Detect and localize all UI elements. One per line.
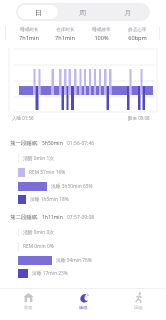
staticText: REM 0min 0% bbox=[23, 243, 54, 250]
staticText: 1h11min bbox=[42, 214, 63, 221]
staticText: 01:56-07:46 bbox=[67, 140, 95, 147]
button[interactable]: 运动 bbox=[111, 292, 166, 316]
staticText: 浅睡 54min 76% bbox=[56, 257, 92, 264]
staticText: 周 bbox=[79, 8, 86, 17]
staticText: 月 bbox=[124, 8, 131, 17]
staticText: 07:57-09:08 bbox=[67, 214, 95, 221]
staticText: 睡眠 bbox=[79, 305, 88, 310]
staticText: 100% bbox=[94, 34, 109, 42]
staticText: REM 57min 16% bbox=[29, 169, 66, 176]
staticText: 静态心率 bbox=[128, 27, 147, 33]
staticText: 深睡 1h5min 18% bbox=[30, 196, 69, 203]
staticText: 7h1min bbox=[19, 34, 39, 42]
staticText: 深睡 17min 23% bbox=[32, 270, 68, 277]
staticText: 在床时长 bbox=[56, 27, 75, 33]
staticText: 清醒 0min 1次 bbox=[23, 155, 55, 162]
staticText: 睡眠效率 bbox=[92, 27, 111, 33]
staticText: 运动 bbox=[134, 305, 143, 310]
staticText: 睡眠时长 bbox=[20, 27, 39, 33]
staticText: 60bpm bbox=[128, 34, 147, 42]
button[interactable]: 周 bbox=[62, 5, 103, 19]
staticText: 日 bbox=[35, 8, 42, 17]
button[interactable]: 睡眠 bbox=[56, 292, 111, 316]
staticText: 7h1min bbox=[55, 34, 75, 42]
staticText: 清醒 0min 0次 bbox=[23, 229, 55, 236]
button[interactable]: 月 bbox=[107, 5, 148, 19]
button[interactable]: 日 bbox=[18, 5, 58, 19]
staticText: 入睡 01:56 bbox=[12, 115, 34, 121]
staticText: 5h50min bbox=[42, 140, 63, 147]
staticText: 第二段睡眠 bbox=[10, 214, 38, 221]
staticText: 浅睡 3h50min 65% bbox=[51, 183, 93, 190]
button[interactable]: 首页 bbox=[0, 292, 56, 316]
staticText: 首页 bbox=[24, 305, 33, 310]
staticText: 醒来 09:08 bbox=[128, 115, 150, 121]
staticText: 第一段睡眠 bbox=[10, 140, 38, 147]
